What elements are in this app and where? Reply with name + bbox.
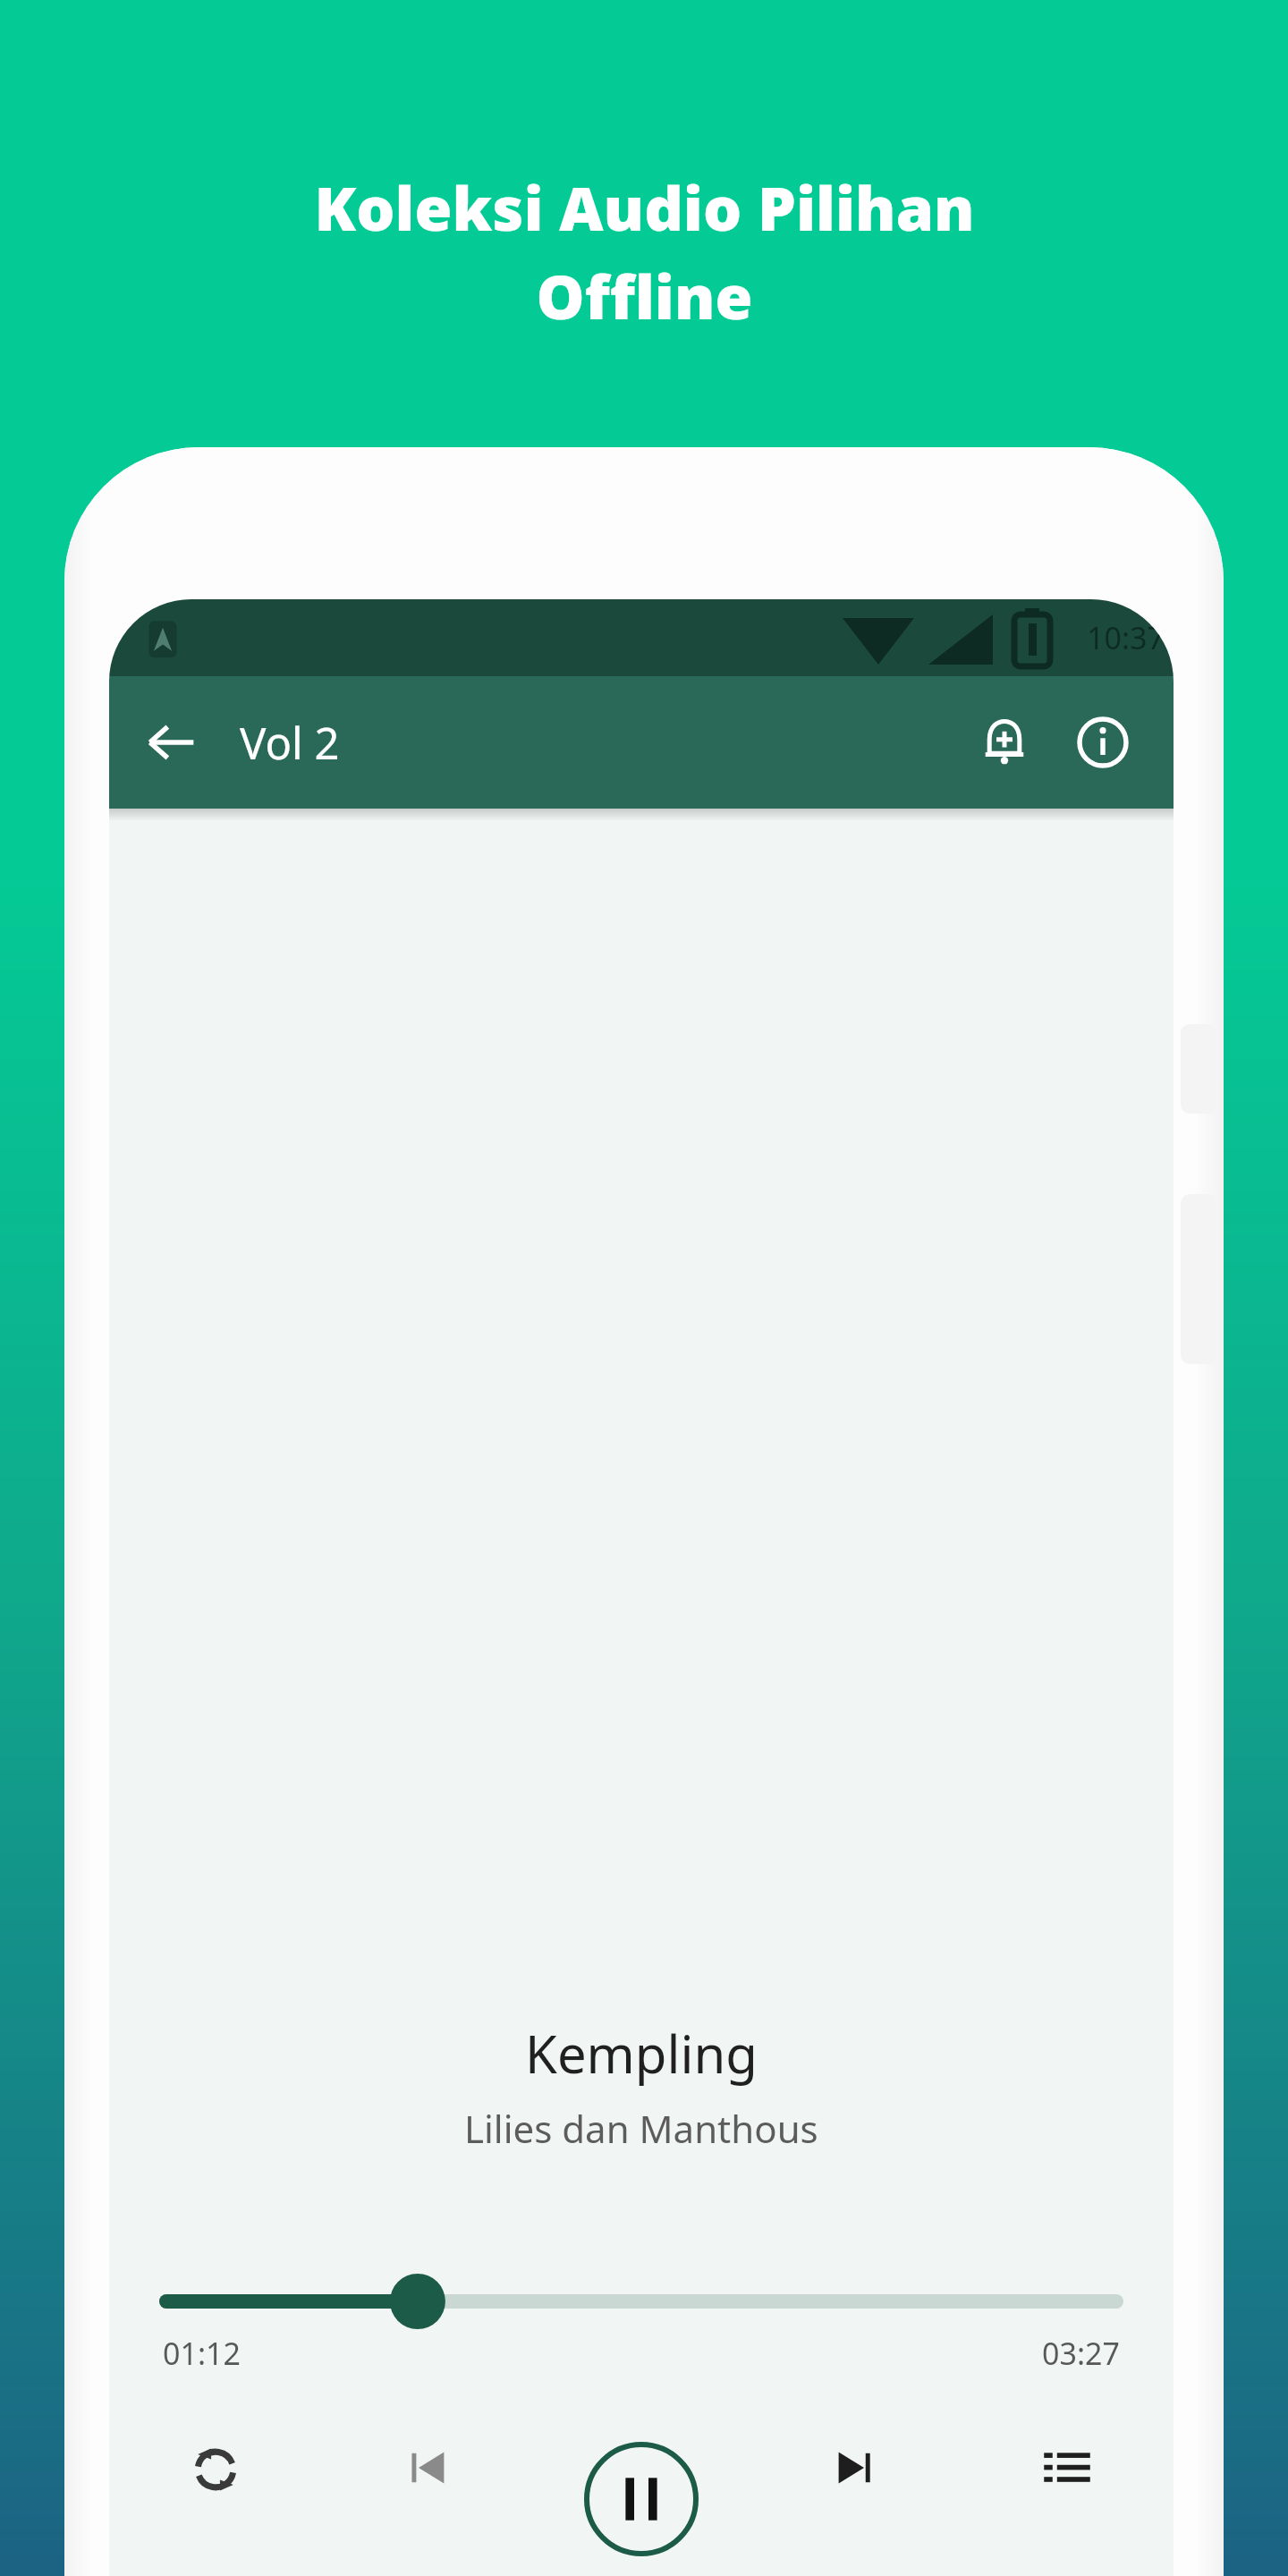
button[interactable]: Next [748, 2415, 961, 2576]
button[interactable]: Info [1054, 693, 1152, 792]
button[interactable]: Repeat [109, 2415, 322, 2576]
staticText: 03:27 [1042, 2333, 1120, 2374]
button[interactable]: Add alarm [955, 693, 1054, 792]
staticText: Koleksi Audio Pilihan [314, 165, 975, 249]
staticText: Vol 2 [240, 713, 340, 773]
staticText: Kempling [525, 2018, 758, 2089]
button[interactable]: Playlist [961, 2415, 1174, 2576]
staticText: 01:12 [163, 2333, 241, 2374]
staticText: 10:37 [1087, 617, 1165, 658]
button[interactable]: Previous [322, 2415, 535, 2576]
button[interactable]: Back [129, 699, 215, 785]
staticText: Offline [536, 254, 753, 337]
button[interactable] [159, 2270, 1123, 2333]
staticText: Lilies dan Manthous [464, 2103, 818, 2154]
button[interactable]: Pause [535, 2415, 748, 2576]
